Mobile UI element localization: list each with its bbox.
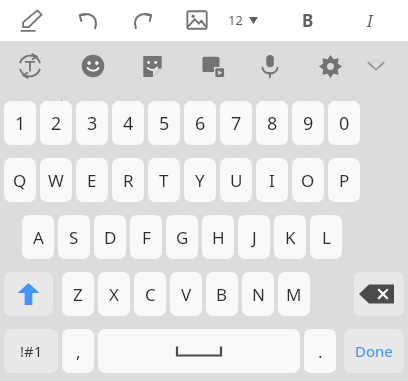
staticText: U: [230, 169, 243, 192]
staticText: N: [252, 283, 265, 306]
staticText: C: [145, 283, 156, 306]
button[interactable]: GIF: [196, 49, 230, 83]
button[interactable]: Font size 12: [228, 9, 258, 31]
staticText: I: [367, 9, 373, 32]
button[interactable]: T: [148, 158, 180, 202]
button[interactable]: 2: [40, 101, 72, 145]
button[interactable]: M: [278, 272, 310, 316]
button[interactable]: Emoji: [76, 49, 110, 83]
button[interactable]: S: [58, 215, 90, 259]
staticText: G: [176, 226, 189, 249]
button[interactable]: N: [242, 272, 274, 316]
button[interactable]: Text recognition: [13, 49, 47, 83]
staticText: Z: [73, 283, 83, 306]
button[interactable]: 7: [220, 101, 252, 145]
button[interactable]: Backspace: [354, 272, 404, 316]
staticText: F: [142, 226, 151, 249]
button[interactable]: P: [328, 158, 360, 202]
staticText: Done: [355, 341, 393, 361]
staticText: 2: [51, 111, 62, 136]
button[interactable]: Collapse: [359, 49, 393, 83]
staticText: 6: [195, 111, 206, 136]
button[interactable]: R: [112, 158, 144, 202]
button[interactable]: ,: [62, 329, 94, 373]
staticText: K: [285, 226, 296, 249]
staticText: W: [48, 169, 64, 192]
button[interactable]: I: [256, 158, 288, 202]
staticText: 5: [159, 111, 170, 136]
button[interactable]: Q: [4, 158, 36, 202]
button[interactable]: .: [304, 329, 336, 373]
button[interactable]: Insert image: [181, 4, 213, 36]
button[interactable]: Space: [98, 329, 300, 373]
button[interactable]: Stickers: [135, 49, 169, 83]
button[interactable]: !#1: [4, 329, 58, 373]
staticText: 1: [15, 111, 26, 136]
button[interactable]: 5: [148, 101, 180, 145]
staticText: L: [322, 226, 331, 249]
button[interactable]: Settings: [313, 49, 347, 83]
button[interactable]: V: [170, 272, 202, 316]
staticText: D: [104, 226, 117, 249]
button[interactable]: E: [76, 158, 108, 202]
button[interactable]: 9: [292, 101, 324, 145]
staticText: 4: [123, 111, 134, 136]
button[interactable]: Shift: [4, 272, 53, 316]
staticText: Y: [195, 169, 205, 192]
button[interactable]: X: [98, 272, 130, 316]
button[interactable]: H: [202, 215, 234, 259]
staticText: I: [269, 169, 275, 192]
button[interactable]: A: [22, 215, 54, 259]
button[interactable]: 4: [112, 101, 144, 145]
button[interactable]: Y: [184, 158, 216, 202]
button[interactable]: I: [358, 8, 382, 32]
button[interactable]: Done: [344, 329, 404, 373]
button[interactable]: D: [94, 215, 126, 259]
staticText: 8: [267, 111, 278, 136]
staticText: V: [181, 283, 192, 306]
staticText: E: [87, 169, 97, 192]
staticText: .: [318, 340, 323, 363]
staticText: T: [159, 169, 169, 192]
staticText: O: [301, 169, 315, 192]
staticText: R: [123, 169, 134, 192]
button[interactable]: 0: [328, 101, 360, 145]
staticText: 12: [228, 11, 243, 29]
button[interactable]: 1: [4, 101, 36, 145]
button[interactable]: K: [274, 215, 306, 259]
staticText: ,: [76, 340, 81, 363]
staticText: !#1: [20, 341, 43, 361]
staticText: 0: [339, 111, 350, 136]
button[interactable]: F: [130, 215, 162, 259]
button[interactable]: G: [166, 215, 198, 259]
staticText: H: [212, 226, 225, 249]
staticText: Q: [13, 169, 27, 192]
staticText: B: [216, 283, 228, 306]
button[interactable]: B: [296, 8, 320, 32]
button[interactable]: Redo: [127, 4, 159, 36]
button[interactable]: U: [220, 158, 252, 202]
button[interactable]: Voice input: [253, 49, 287, 83]
staticText: B: [302, 9, 314, 32]
button[interactable]: C: [134, 272, 166, 316]
staticText: X: [109, 283, 119, 306]
staticText: J: [252, 226, 257, 249]
button[interactable]: B: [206, 272, 238, 316]
button[interactable]: L: [310, 215, 342, 259]
staticText: A: [33, 226, 44, 249]
button[interactable]: Z: [62, 272, 94, 316]
button[interactable]: 3: [76, 101, 108, 145]
staticText: S: [69, 226, 79, 249]
button[interactable]: 8: [256, 101, 288, 145]
button[interactable]: 6: [184, 101, 216, 145]
button[interactable]: W: [40, 158, 72, 202]
button[interactable]: Highlighter: [16, 4, 48, 36]
button[interactable]: O: [292, 158, 324, 202]
staticText: 7: [231, 111, 242, 136]
staticText: 9: [303, 111, 314, 136]
button[interactable]: Undo: [72, 4, 104, 36]
staticText: M: [286, 283, 302, 306]
button[interactable]: J: [238, 215, 270, 259]
staticText: 3: [87, 111, 98, 136]
staticText: P: [339, 169, 350, 192]
